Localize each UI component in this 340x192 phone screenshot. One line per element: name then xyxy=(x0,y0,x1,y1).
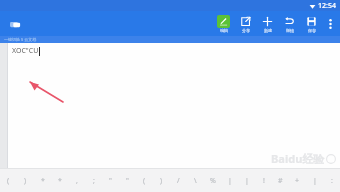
staticText: , xyxy=(76,176,78,186)
button[interactable]: " xyxy=(119,169,136,192)
button[interactable]: ( xyxy=(136,169,153,192)
button[interactable]: 分享 xyxy=(234,11,256,36)
button[interactable]: * xyxy=(51,169,68,192)
button[interactable]: + xyxy=(289,169,306,192)
staticText: \ xyxy=(194,176,197,186)
staticText: ! xyxy=(263,176,265,186)
staticText: " xyxy=(126,176,129,186)
staticText: 一键切换 S 云文档 xyxy=(4,37,37,42)
staticText: 新建 xyxy=(264,28,272,33)
staticText: Baidu经验 xyxy=(271,151,325,166)
staticText: 保存 xyxy=(308,28,316,33)
button[interactable]: ) xyxy=(153,169,170,192)
staticText: | xyxy=(228,176,232,186)
button[interactable]: 撤销 xyxy=(278,11,300,36)
staticText: XOC"CU xyxy=(12,46,39,56)
button[interactable]: More options xyxy=(322,11,338,36)
staticText: | xyxy=(245,176,249,186)
staticText: ; xyxy=(93,176,95,186)
staticText: : xyxy=(331,176,333,186)
staticText: 编辑 xyxy=(220,28,228,33)
staticText: 撤销 xyxy=(286,28,294,33)
staticText: ) xyxy=(160,176,163,186)
button[interactable]: % xyxy=(204,169,221,192)
button[interactable]: 新建 xyxy=(256,11,278,36)
button[interactable]: ! xyxy=(255,169,272,192)
button[interactable]: 保存 xyxy=(300,11,322,36)
button[interactable]: / xyxy=(170,169,187,192)
staticText: | xyxy=(313,176,317,186)
button[interactable]: ; xyxy=(85,169,102,192)
button[interactable] xyxy=(7,43,340,175)
staticText: ( xyxy=(7,176,10,186)
button[interactable]: " xyxy=(102,169,119,192)
button[interactable]: | xyxy=(238,169,255,192)
staticText: # xyxy=(278,176,283,186)
button[interactable]: | xyxy=(221,169,238,192)
staticText: ) xyxy=(24,176,27,186)
button[interactable]: # xyxy=(272,169,289,192)
staticText: 12:54 xyxy=(318,1,336,11)
button[interactable]: \ xyxy=(187,169,204,192)
staticText: / xyxy=(177,176,180,186)
staticText: " xyxy=(109,176,112,186)
button[interactable]: 编辑 xyxy=(212,11,234,36)
staticText: % xyxy=(210,176,216,186)
button[interactable]: ) xyxy=(17,169,34,192)
button[interactable]: | xyxy=(306,169,323,192)
staticText: ( xyxy=(143,176,146,186)
button[interactable]: Documents xyxy=(6,15,24,33)
staticText: + xyxy=(295,176,300,186)
staticText: * xyxy=(58,176,62,186)
button[interactable]: * xyxy=(34,169,51,192)
staticText: 分享 xyxy=(242,28,250,33)
button[interactable]: ( xyxy=(0,169,17,192)
staticText: * xyxy=(41,176,45,186)
